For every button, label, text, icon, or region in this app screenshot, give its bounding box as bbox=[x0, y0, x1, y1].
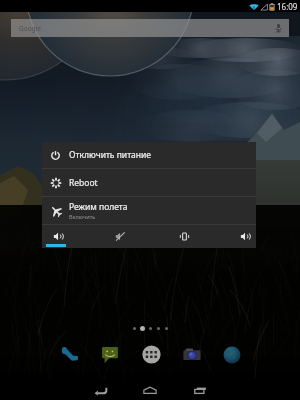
button[interactable]: Home bbox=[137, 380, 163, 400]
button[interactable]: Отключить питание bbox=[42, 142, 256, 168]
button[interactable]: Режим полета bbox=[42, 197, 256, 224]
button[interactable]: Phone bbox=[54, 339, 86, 371]
button[interactable]: Camera bbox=[176, 339, 208, 371]
button[interactable]: Recent apps bbox=[187, 380, 213, 400]
staticText: Reboot bbox=[69, 177, 98, 189]
staticText: 16:09 bbox=[277, 1, 298, 12]
button[interactable]: Vibrate bbox=[171, 225, 197, 248]
button[interactable]: Reboot bbox=[42, 169, 256, 196]
button[interactable]: Volume up bbox=[232, 225, 258, 248]
button[interactable]: Browser bbox=[216, 339, 248, 371]
button[interactable]: Back bbox=[87, 380, 113, 400]
button[interactable]: Apps bbox=[135, 338, 167, 370]
staticText: Google bbox=[19, 24, 41, 33]
button[interactable]: Silent bbox=[107, 225, 133, 248]
staticText: Отключить питание bbox=[69, 149, 152, 161]
staticText: Режим полета bbox=[69, 201, 128, 213]
staticText: Включить bbox=[69, 213, 96, 220]
button[interactable]: Google bbox=[11, 19, 289, 37]
button[interactable]: Messaging bbox=[94, 339, 126, 371]
button[interactable]: Sound on bbox=[45, 225, 71, 248]
